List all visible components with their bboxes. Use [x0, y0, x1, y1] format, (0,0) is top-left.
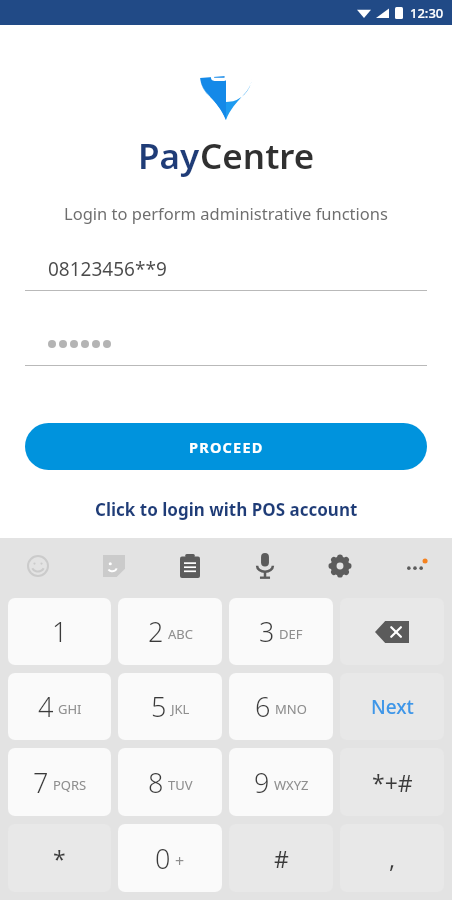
staticText: 2 — [148, 613, 164, 650]
staticText: PROCEED — [189, 437, 264, 457]
staticText: TUV — [168, 776, 193, 794]
button[interactable]: Voice input — [227, 538, 302, 594]
button[interactable]: * — [8, 824, 111, 892]
staticText: 5 — [151, 688, 167, 725]
staticText: 6 — [255, 688, 271, 725]
staticText: WXYZ — [274, 776, 309, 794]
button[interactable]: , — [340, 824, 444, 892]
staticText: 08123456**9 — [48, 256, 167, 282]
staticText: , — [389, 843, 396, 874]
staticText: 4 — [38, 688, 54, 725]
button[interactable]: 4 GHI — [8, 673, 111, 740]
button[interactable]: Settings — [302, 538, 377, 594]
staticText: Next — [371, 694, 414, 720]
staticText: 9 — [254, 764, 270, 801]
staticText: PQRS — [53, 776, 87, 794]
button[interactable]: PROCEED — [25, 423, 427, 470]
button[interactable] — [25, 329, 427, 366]
staticText: JKL — [171, 700, 190, 718]
button[interactable]: 8 TUV — [118, 748, 222, 816]
staticText: 0 — [155, 840, 171, 877]
staticText: 1 — [52, 613, 68, 650]
button[interactable]: 3 DEF — [229, 598, 333, 665]
staticText: + — [175, 850, 185, 872]
staticText: # — [274, 843, 289, 874]
staticText: 12:30 — [410, 4, 444, 22]
staticText: GHI — [58, 700, 82, 718]
staticText: Click to login with POS account — [95, 498, 358, 521]
button[interactable]: Next — [340, 673, 444, 740]
button[interactable]: 5 JKL — [118, 673, 222, 740]
button[interactable]: # — [229, 824, 333, 892]
button[interactable]: *+# — [340, 748, 444, 816]
button[interactable]: 7 PQRS — [8, 748, 111, 816]
staticText: DEF — [279, 625, 303, 643]
staticText: Centre — [200, 132, 315, 180]
button[interactable]: 2 ABC — [118, 598, 222, 665]
button[interactable]: 9 WXYZ — [229, 748, 333, 816]
button[interactable]: Clipboard — [152, 538, 227, 594]
staticText: 8 — [148, 764, 164, 801]
staticText: 3 — [259, 613, 275, 650]
staticText: ABC — [168, 625, 193, 643]
staticText: Pay — [138, 132, 200, 180]
staticText: * — [53, 843, 66, 874]
staticText: 7 — [33, 764, 49, 801]
button[interactable]: Emoji — [0, 538, 76, 594]
button[interactable]: Stickers — [76, 538, 152, 594]
button[interactable]: Click to login with POS account — [0, 498, 452, 521]
button[interactable]: Backspace — [340, 598, 444, 665]
staticText: Login to perform administrative function… — [48, 202, 404, 224]
button[interactable]: 1 — [8, 598, 111, 665]
button[interactable]: More options — [377, 538, 452, 594]
button[interactable]: 08123456**9 — [25, 254, 427, 291]
button[interactable]: 0 + — [118, 824, 222, 892]
staticText: *+# — [372, 767, 413, 798]
button[interactable]: 6 MNO — [229, 673, 333, 740]
staticText: MNO — [275, 700, 307, 718]
